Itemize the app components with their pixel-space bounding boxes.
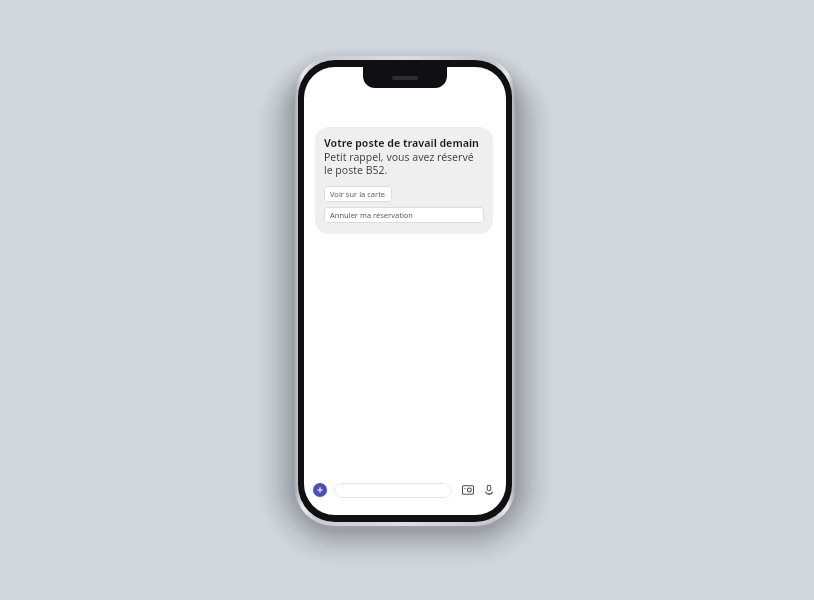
staticText: Annuler ma réservation — [330, 210, 414, 220]
button[interactable]: Add attachment — [313, 483, 327, 497]
button[interactable]: Voice message — [481, 482, 497, 498]
button[interactable]: Message input field — [334, 483, 452, 498]
staticText: Voir sur la carte — [330, 189, 386, 199]
staticText: Votre poste de travail demain — [324, 136, 479, 150]
button[interactable]: Camera — [460, 482, 476, 498]
button[interactable]: Voir sur la carte — [324, 186, 392, 202]
staticText: Petit rappel, vous avez réservé le poste… — [324, 150, 484, 177]
button[interactable]: Annuler ma réservation — [324, 207, 484, 223]
